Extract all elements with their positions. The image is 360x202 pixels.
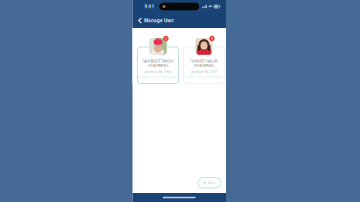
staticText: Update User Information	[184, 75, 224, 79]
staticText: Manage User	[144, 18, 174, 23]
staticText: Update User Information	[138, 75, 178, 79]
staticText: Aadhaar No. 958	[145, 69, 171, 74]
staticText: SHMEET KAUR	[191, 58, 217, 64]
staticText: DHARIWAL	[147, 62, 168, 68]
button[interactable]: ADD	[198, 177, 221, 188]
staticText: ADD	[208, 180, 216, 185]
staticText: Aadhaar No. 958	[191, 69, 217, 74]
button[interactable]: Manage User	[132, 13, 174, 28]
button[interactable]: SHMEET KAUR	[183, 38, 224, 84]
staticText: 9:41	[144, 3, 154, 10]
staticText: DHARIWAL	[193, 62, 214, 68]
staticText: SAHIBJOT SINGH	[142, 58, 173, 64]
button[interactable]: SAHIBJOT SINGH	[137, 38, 178, 84]
